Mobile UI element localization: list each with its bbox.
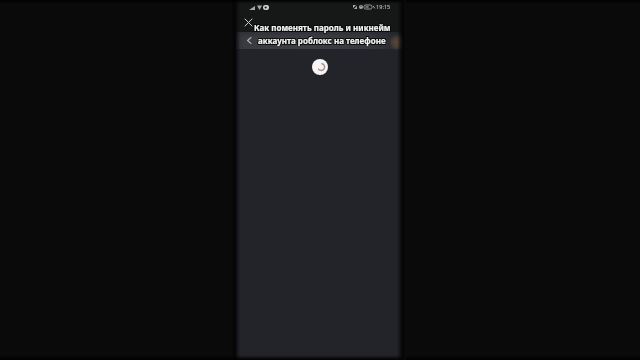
staticText: Как поменять пароль и никнейм	[255, 23, 392, 34]
staticText: аккаунта роблокс на телефоне	[258, 35, 386, 46]
staticText: Как поменять пароль и никнейм	[253, 22, 390, 32]
staticText: аккаунта роблокс на телефоне	[257, 35, 385, 46]
staticText: аккаунта роблокс на телефоне	[259, 35, 387, 46]
staticText: аккаунта роблокс на телефоне	[258, 36, 386, 46]
staticText: Как поменять пароль и никнейм	[254, 22, 391, 32]
staticText: аккаунта роблокс на телефоне	[258, 34, 386, 45]
button[interactable]: Back	[241, 32, 257, 48]
staticText: аккаунта роблокс на телефоне	[257, 36, 385, 46]
staticText: аккаунта роблокс на телефоне	[257, 34, 385, 45]
staticText: аккаунта роблокс на телефоне	[259, 36, 387, 46]
staticText: аккаунта роблокс на телефоне	[259, 34, 387, 45]
staticText: Как поменять пароль и никнейм	[255, 22, 392, 32]
button[interactable]: Как поменять пароль и никнейм	[239, 20, 405, 46]
staticText: Как поменять пароль и никнейм	[255, 22, 392, 33]
staticText: Как поменять пароль и никнейм	[254, 23, 391, 34]
button[interactable]: Close	[242, 16, 254, 28]
staticText: Как поменять пароль и никнейм	[253, 22, 390, 33]
staticText: Как поменять пароль и никнейм	[254, 22, 391, 33]
staticText: 19:15	[376, 3, 391, 11]
staticText: Как поменять пароль и никнейм	[253, 23, 390, 34]
